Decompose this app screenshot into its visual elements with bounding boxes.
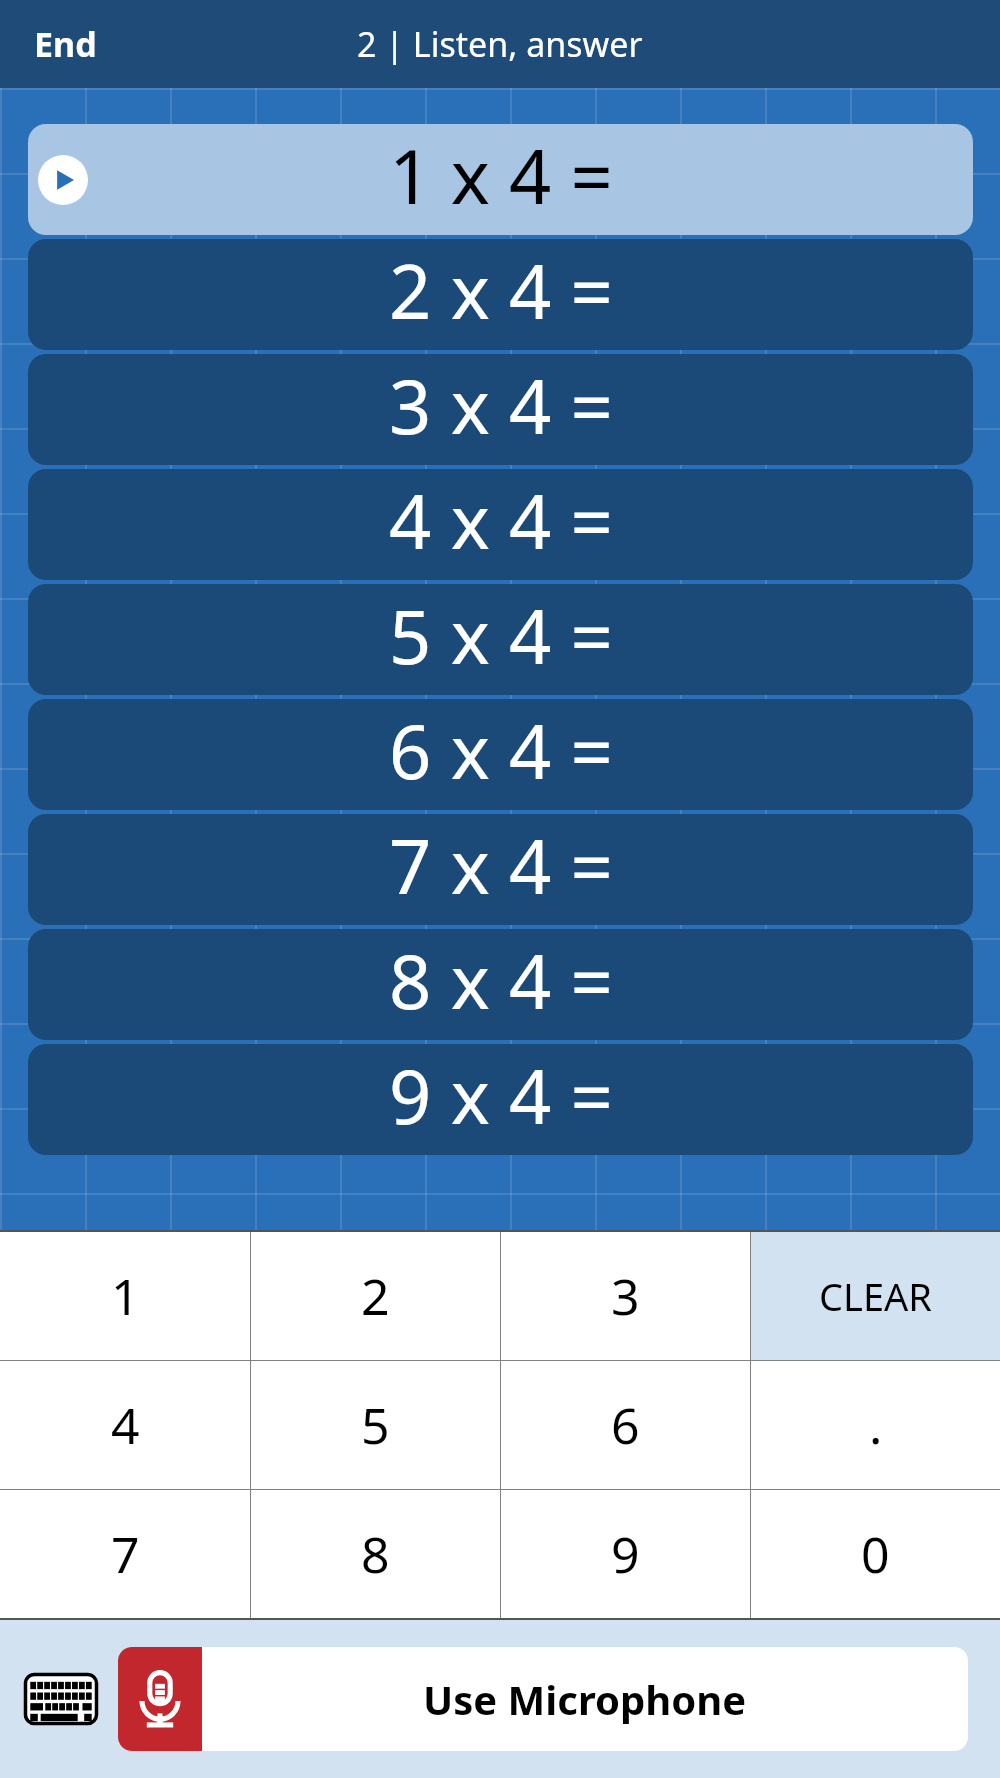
staticText: Use Microphone (423, 1672, 747, 1726)
button[interactable]: 2 x 4 = (28, 239, 973, 350)
staticText: 6 x 4 = (389, 700, 613, 801)
button[interactable]: 4 x 4 = (28, 469, 973, 580)
button[interactable]: 6 x 4 = (28, 699, 973, 810)
button[interactable]: 0 (751, 1490, 1000, 1618)
button[interactable]: 5 (251, 1361, 500, 1489)
staticText: 6 (611, 1391, 640, 1459)
staticText: 2 | Listen, answer (357, 21, 643, 67)
staticText: 9 x 4 = (389, 1045, 613, 1146)
staticText: 1 x 4 = (389, 125, 613, 226)
staticText: 5 (361, 1391, 390, 1459)
staticText: 8 (361, 1520, 390, 1588)
staticText: 1 (111, 1262, 140, 1330)
button[interactable]: 6 (501, 1361, 750, 1489)
button[interactable]: CLEAR (751, 1232, 1000, 1360)
staticText: 9 (611, 1520, 640, 1588)
staticText: End (34, 21, 97, 67)
staticText: . (869, 1391, 883, 1459)
staticText: 7 (111, 1520, 140, 1588)
button[interactable]: Keyboard (18, 1656, 104, 1742)
staticText: 3 (611, 1262, 640, 1330)
button[interactable]: 9 (501, 1490, 750, 1618)
button[interactable]: 4 (0, 1361, 250, 1489)
staticText: 4 (111, 1391, 140, 1459)
button[interactable]: 2 (251, 1232, 500, 1360)
staticText: 7 x 4 = (389, 815, 613, 916)
staticText: 8 x 4 = (389, 930, 613, 1031)
staticText: 5 x 4 = (389, 585, 613, 686)
button[interactable]: 7 (0, 1490, 250, 1618)
button[interactable]: 3 (501, 1232, 750, 1360)
button[interactable]: . (751, 1361, 1000, 1489)
button[interactable]: 1 (0, 1232, 250, 1360)
staticText: CLEAR (819, 1270, 932, 1322)
button[interactable]: Play (28, 124, 973, 235)
staticText: 2 x 4 = (389, 240, 613, 341)
staticText: 4 x 4 = (389, 470, 613, 571)
staticText: 3 x 4 = (389, 355, 613, 456)
staticText: 0 (861, 1520, 890, 1588)
button[interactable]: 9 x 4 = (28, 1044, 973, 1155)
button[interactable]: End (20, 13, 111, 75)
button[interactable]: 8 (251, 1490, 500, 1618)
staticText: 2 (361, 1262, 390, 1330)
button[interactable]: 3 x 4 = (28, 354, 973, 465)
button[interactable]: 7 x 4 = (28, 814, 973, 925)
other: Play (38, 155, 88, 205)
button[interactable]: 8 x 4 = (28, 929, 973, 1040)
button[interactable]: 5 x 4 = (28, 584, 973, 695)
button[interactable]: Use Microphone (118, 1647, 968, 1751)
